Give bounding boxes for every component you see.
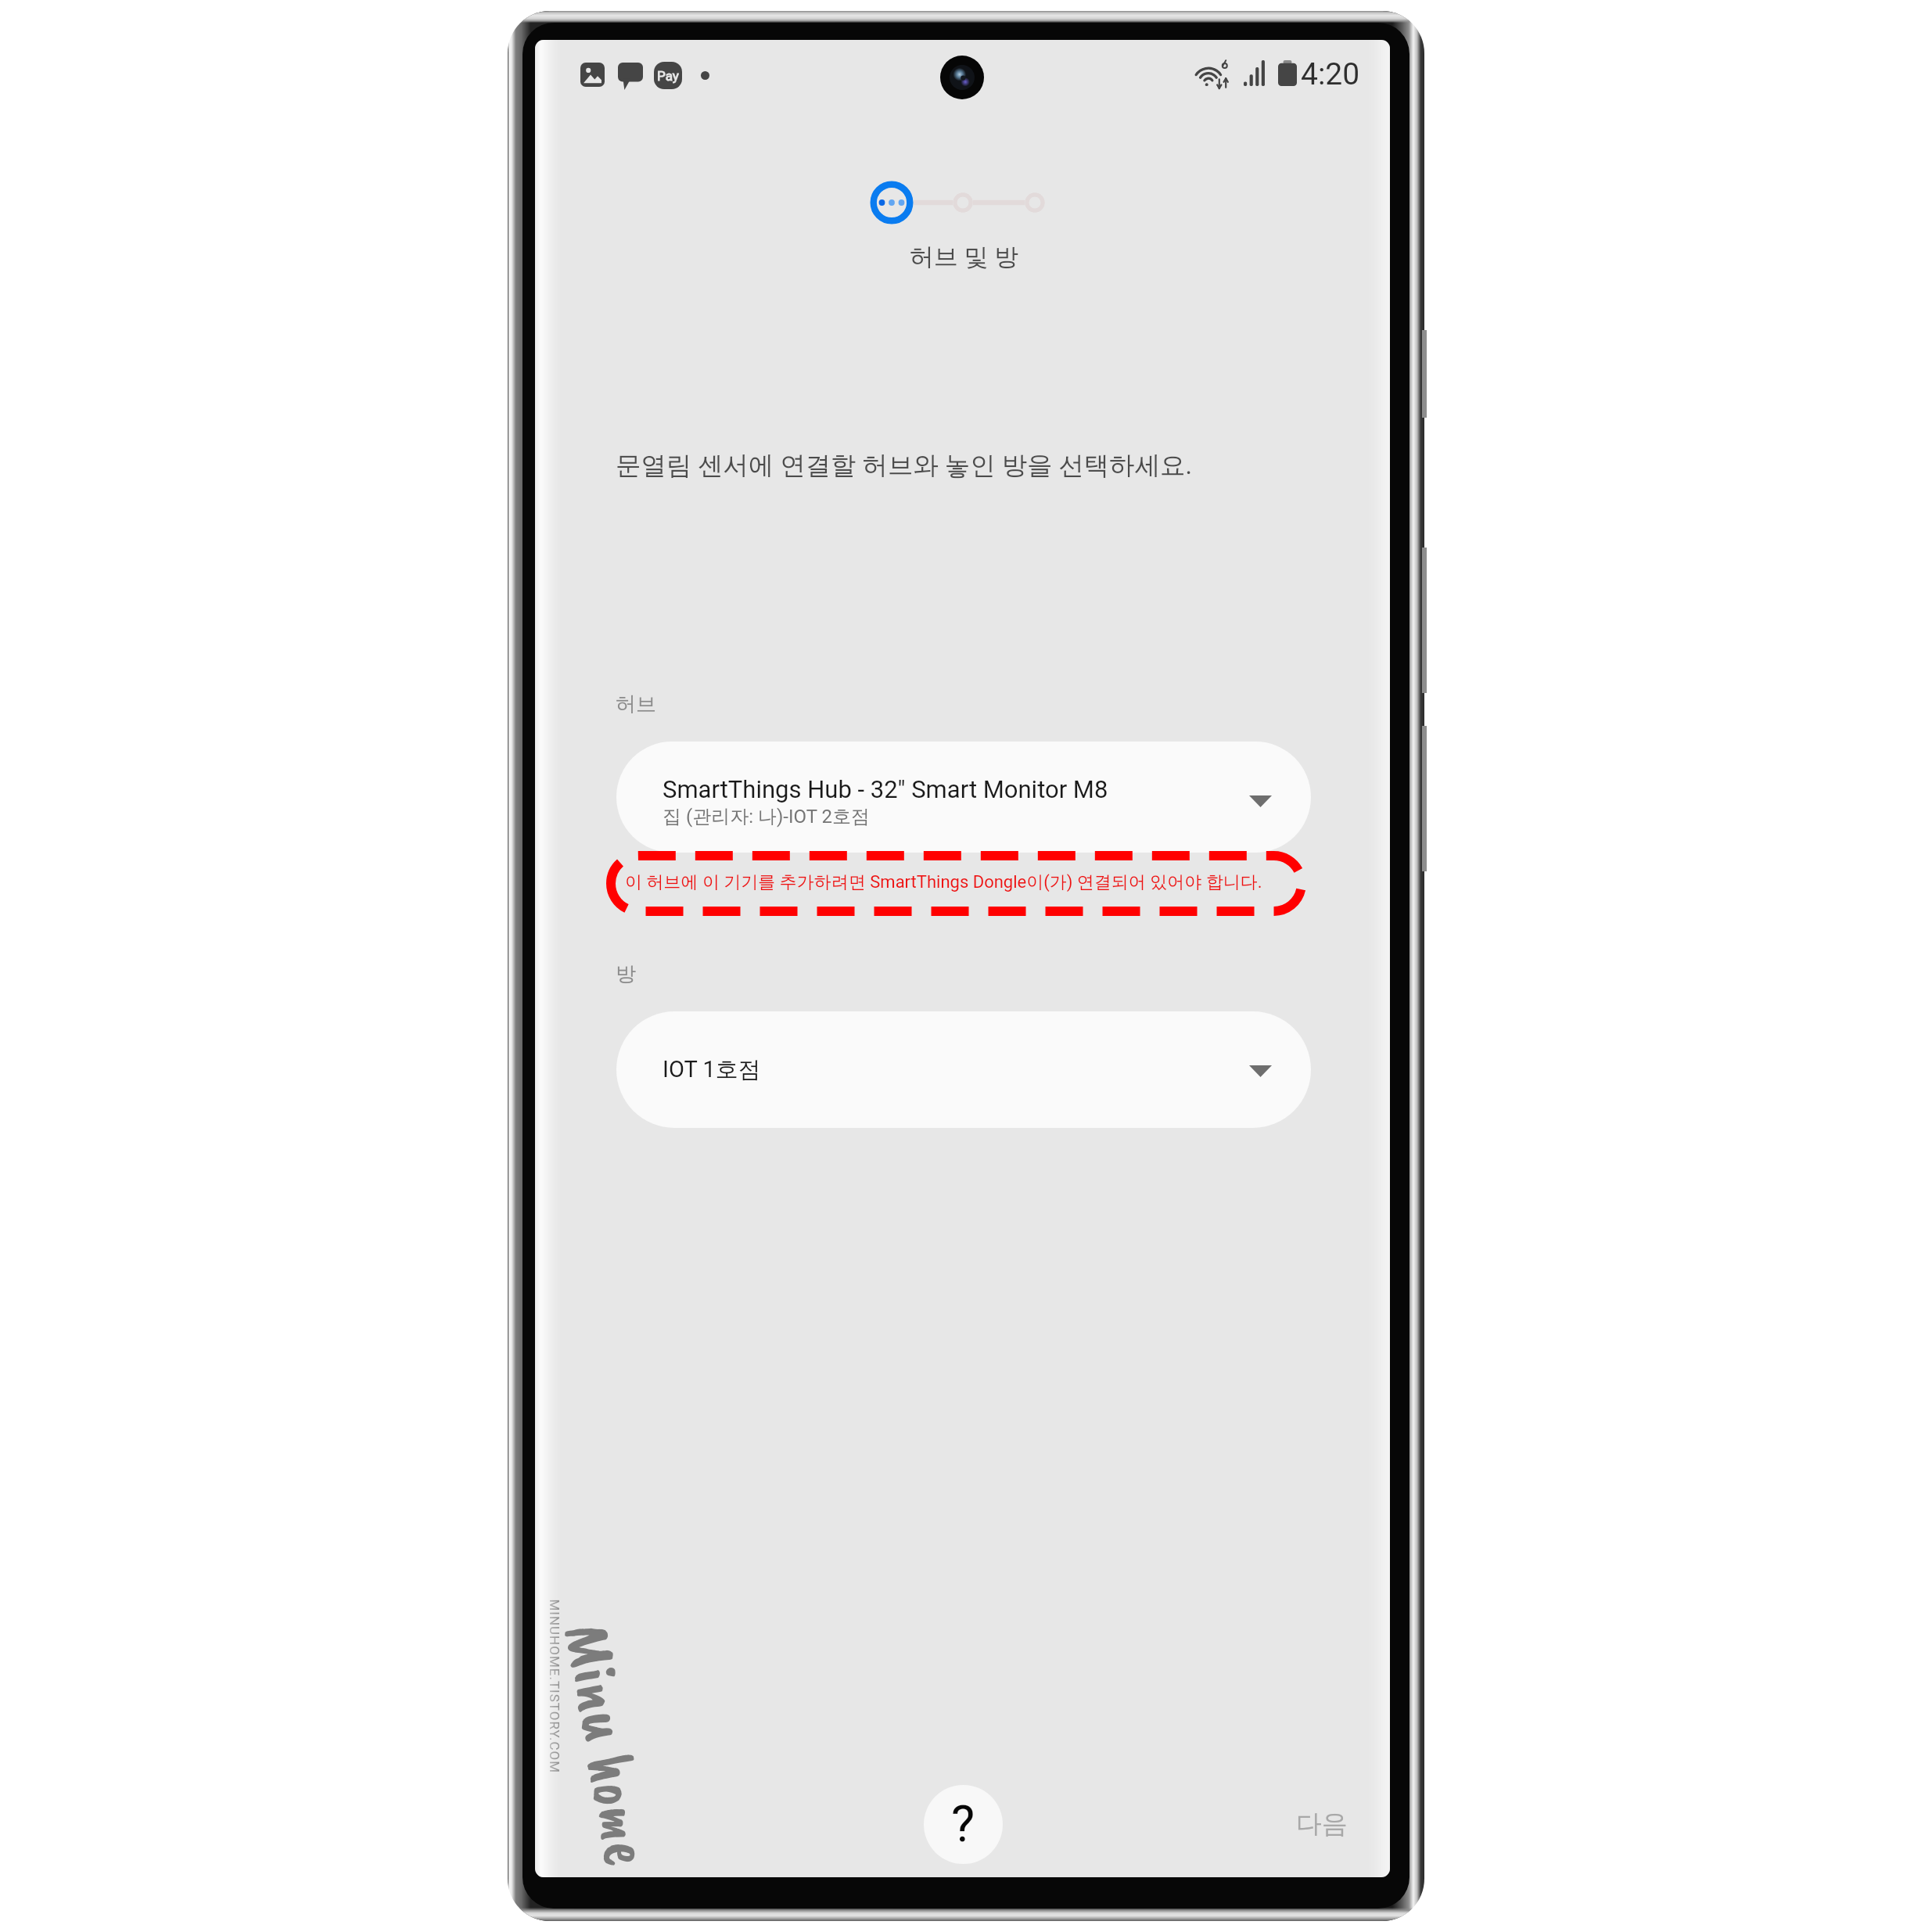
staticText: 방 [616, 961, 636, 987]
staticText: Minu home [546, 1616, 671, 1872]
staticText: 문열림 센서에 연결할 허브와 놓인 방을 선택하세요. [616, 450, 1192, 482]
staticText: ? [951, 1795, 975, 1854]
staticText: 4:20 [1301, 56, 1360, 92]
staticText: SmartThings Hub - 32" Smart Monitor M8 [663, 775, 1108, 803]
staticText: 집 (관리자: 나)-IOT 2호점 [663, 805, 870, 828]
staticText: MINUHOME.TISTORY.COM [546, 1599, 562, 1774]
button[interactable]: 도움말 [924, 1785, 1003, 1864]
staticText: 허브 [616, 691, 656, 717]
staticText: Pay [657, 68, 679, 84]
staticText: 허브 및 방 [910, 242, 1019, 272]
button[interactable]: IOT 1호점 [616, 1011, 1311, 1128]
staticText: 다음 [1296, 1808, 1348, 1840]
button[interactable]: SmartThings Hub - 32" Smart Monitor M8 [616, 742, 1311, 853]
button[interactable]: 다음 [1273, 1788, 1368, 1863]
staticText: IOT 1호점 [663, 1055, 761, 1084]
staticText: 이 허브에 이 기기를 추가하려면 SmartThings Dongle이(가)… [625, 871, 1262, 893]
